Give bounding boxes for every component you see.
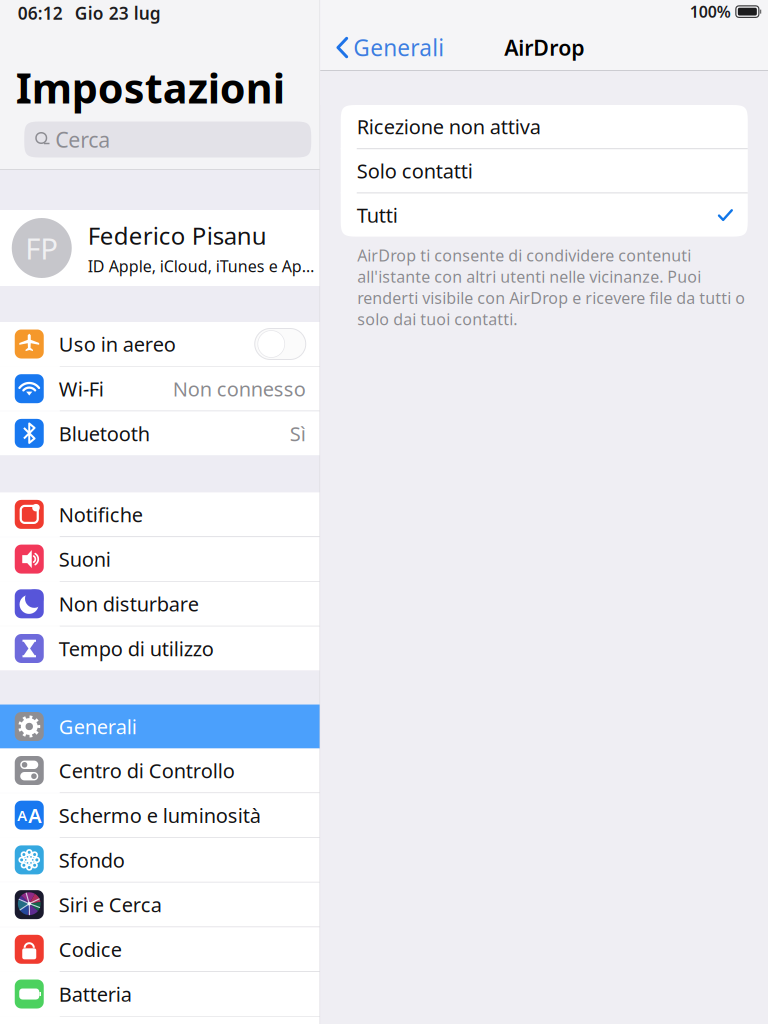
staticText: FP <box>25 228 58 267</box>
button[interactable]: Generali <box>0 704 320 748</box>
button[interactable]: Sfondo <box>0 838 320 882</box>
button[interactable]: FP <box>0 210 320 286</box>
button[interactable]: Suoni <box>0 537 320 581</box>
staticText: 06:12 <box>18 1 63 24</box>
staticText: Solo contatti <box>357 157 473 184</box>
button[interactable]: Ricezione non attiva <box>341 105 748 148</box>
button[interactable]: Siri e Cerca <box>0 883 320 927</box>
button[interactable]: Batteria <box>0 972 320 1016</box>
staticText: Generali <box>59 713 137 740</box>
staticText: Cerca <box>55 125 110 154</box>
staticText: Sfondo <box>59 847 125 873</box>
staticText: Schermo e luminosità <box>59 802 261 828</box>
button[interactable]: Tempo di utilizzo <box>0 626 320 670</box>
staticText: 100% <box>690 1 731 22</box>
staticText: A <box>17 805 27 825</box>
button[interactable]: Bluetooth <box>0 411 320 455</box>
staticText: Gio 23 lug <box>75 1 161 24</box>
button[interactable]: Codice <box>0 927 320 971</box>
button[interactable]: Wi-Fi <box>0 367 320 411</box>
button[interactable]: Uso in aereo <box>0 322 320 366</box>
staticText: Centro di Controllo <box>59 757 235 784</box>
staticText: Non connesso <box>173 375 306 402</box>
button[interactable]: A <box>0 793 320 837</box>
staticText: AirDrop <box>504 33 584 62</box>
staticText: Generali <box>353 32 444 62</box>
staticText: Wi-Fi <box>59 375 104 402</box>
staticText: ID Apple, iCloud, iTunes e App St… <box>88 255 323 276</box>
button[interactable]: Tutti <box>341 193 748 237</box>
staticText: A <box>28 802 41 828</box>
button[interactable]: Centro di Controllo <box>0 748 320 792</box>
button[interactable]: Non disturbare <box>0 582 320 626</box>
staticText: Ricezione non attiva <box>357 113 541 140</box>
staticText: Suoni <box>59 546 111 572</box>
button[interactable]: Generali <box>320 25 454 70</box>
staticText: Federico Pisanu <box>88 219 267 251</box>
staticText: Bluetooth <box>59 420 150 447</box>
staticText: Impostazioni <box>16 60 285 115</box>
staticText: Non disturbare <box>59 590 199 617</box>
button[interactable]: Notifiche <box>0 492 320 536</box>
staticText: Sì <box>290 420 306 447</box>
staticText: Codice <box>59 936 122 963</box>
staticText: Tempo di utilizzo <box>59 635 214 662</box>
staticText: Batteria <box>59 981 132 1007</box>
staticText: AirDrop ti consente di condividere conte… <box>357 245 745 330</box>
staticText: Tutti <box>357 202 398 228</box>
staticText: Uso in aereo <box>59 331 176 357</box>
staticText: Notifiche <box>59 501 143 528</box>
staticText: Siri e Cerca <box>59 891 162 918</box>
button[interactable]: Solo contatti <box>341 149 748 192</box>
